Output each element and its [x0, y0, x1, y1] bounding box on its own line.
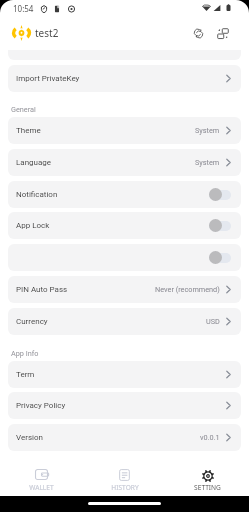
button[interactable]: Toggle — [209, 188, 231, 201]
button[interactable]: Toggle — [209, 219, 231, 232]
staticText: PIN Auto Pass — [16, 285, 68, 294]
staticText: Notification — [16, 190, 58, 199]
staticText: Never (recommend) — [155, 285, 220, 294]
button[interactable]: Sync — [191, 26, 206, 41]
button[interactable]: Theme — [8, 117, 241, 144]
staticText: App Info — [11, 349, 39, 358]
button[interactable]: SETTING — [166, 459, 249, 496]
staticText: System — [195, 126, 220, 135]
staticText: HISTORY — [111, 483, 139, 492]
button[interactable]: PIN Auto Pass — [8, 276, 241, 303]
button[interactable]: Privacy Policy — [8, 392, 241, 419]
staticText: System — [195, 158, 220, 167]
button[interactable]: App Lock — [8, 212, 241, 239]
button[interactable]: Currency — [8, 308, 241, 335]
staticText: Version — [16, 433, 43, 442]
button[interactable]: Import PrivateKey — [8, 65, 241, 92]
button[interactable]: Language — [8, 149, 241, 176]
staticText: Term — [16, 370, 35, 379]
button[interactable]: Toggle — [8, 244, 241, 271]
staticText: Theme — [16, 126, 41, 135]
staticText: Import PrivateKey — [16, 74, 80, 83]
staticText: Language — [16, 158, 52, 167]
staticText: WALLET — [29, 483, 54, 492]
button[interactable]: Version — [8, 424, 241, 451]
button[interactable]: HISTORY — [83, 459, 166, 496]
staticText: v0.0.1 — [200, 433, 220, 442]
staticText: Currency — [16, 317, 48, 326]
staticText: App Lock — [16, 221, 50, 230]
staticText: 10:54 — [13, 3, 34, 14]
staticText: Privacy Policy — [16, 401, 66, 410]
staticText: test2 — [35, 26, 59, 40]
staticText: General — [11, 105, 36, 114]
staticText: SETTING — [194, 483, 221, 492]
button[interactable]: Notification — [8, 181, 241, 208]
button[interactable]: Switch account — [215, 26, 230, 41]
button[interactable]: Term — [8, 361, 241, 388]
button[interactable]: WALLET — [0, 459, 83, 496]
staticText: USD — [206, 317, 220, 326]
button[interactable]: Toggle — [209, 251, 231, 264]
